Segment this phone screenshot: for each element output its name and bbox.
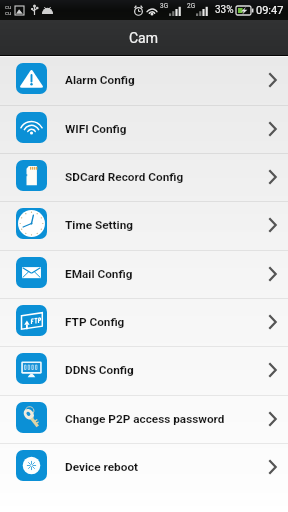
- staticText: cu: [5, 4, 11, 10]
- button[interactable]: EMail Config: [0, 250, 288, 298]
- staticText: 3G: [160, 2, 169, 10]
- staticText: EMail Config: [65, 267, 133, 281]
- button[interactable]: SDCard Record Config: [0, 153, 288, 201]
- staticText: 2G: [187, 2, 196, 10]
- staticText: 33%: [215, 4, 234, 16]
- staticText: Time Setting: [65, 218, 134, 232]
- staticText: WIFI Config: [65, 122, 127, 136]
- staticText: Device reboot: [65, 460, 139, 474]
- button[interactable]: Time Setting: [0, 201, 288, 249]
- button[interactable]: DDNS Config: [0, 346, 288, 394]
- staticText: DDNS Config: [65, 363, 134, 377]
- button[interactable]: Change P2P access password: [0, 395, 288, 443]
- staticText: 09:47: [256, 4, 284, 17]
- staticText: SDCard Record Config: [65, 170, 184, 184]
- button[interactable]: Device reboot: [0, 443, 288, 491]
- staticText: Change P2P access password: [65, 412, 225, 426]
- staticText: Cam: [129, 30, 159, 46]
- button[interactable]: Alarm Config: [0, 56, 288, 104]
- staticText: cu: [5, 10, 11, 16]
- staticText: FTP Config: [65, 315, 125, 329]
- button[interactable]: FTP Config: [0, 298, 288, 346]
- button[interactable]: WIFI Config: [0, 105, 288, 153]
- staticText: Alarm Config: [65, 73, 135, 87]
